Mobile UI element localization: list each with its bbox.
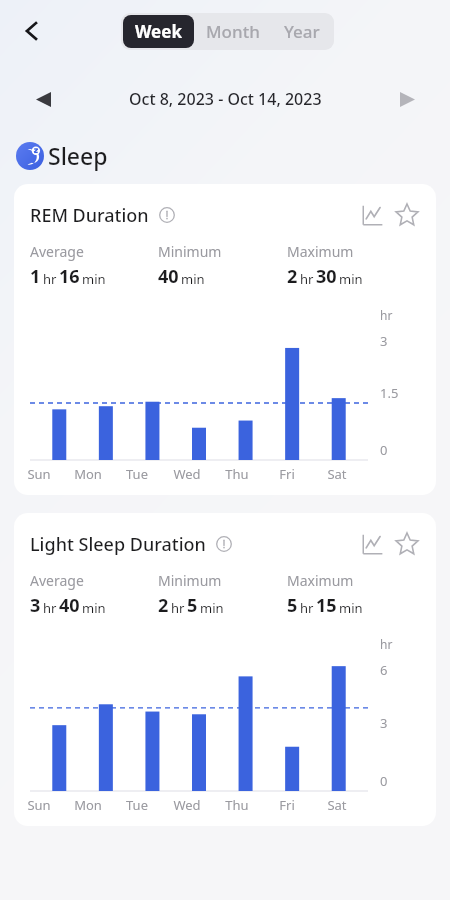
staticText: Tue: [126, 796, 148, 814]
button[interactable]: Chart view: [356, 199, 388, 231]
staticText: REM Duration: [30, 203, 149, 228]
staticText: 6: [380, 661, 388, 679]
staticText: hr: [300, 599, 314, 617]
button[interactable]: Month: [194, 15, 272, 48]
staticText: Tue: [126, 465, 148, 483]
button[interactable]: Info: [213, 533, 235, 555]
staticText: Fri: [279, 796, 295, 814]
button[interactable]: Next week: [390, 82, 424, 116]
staticText: 15: [316, 593, 337, 618]
staticText: 3: [380, 332, 388, 350]
staticText: 0: [380, 441, 388, 459]
staticText: Week: [135, 20, 182, 43]
staticText: Wed: [173, 796, 201, 814]
staticText: min: [339, 270, 363, 288]
staticText: hr: [171, 599, 185, 617]
button[interactable]: Favorite: [390, 198, 424, 232]
staticText: 16: [59, 264, 80, 289]
staticText: 3: [30, 593, 41, 618]
staticText: Year: [284, 20, 320, 43]
staticText: 3: [380, 714, 388, 732]
staticText: 1.5: [380, 384, 399, 402]
staticText: Sat: [327, 796, 347, 814]
staticText: 1: [30, 264, 41, 289]
staticText: Fri: [279, 465, 295, 483]
staticText: 5: [287, 593, 298, 618]
staticText: Light Sleep Duration: [30, 532, 206, 557]
staticText: Sun: [27, 796, 51, 814]
staticText: min: [200, 599, 224, 617]
staticText: Oct 8, 2023 - Oct 14, 2023: [129, 88, 322, 110]
staticText: hr: [380, 307, 393, 323]
staticText: Mon: [74, 796, 102, 814]
staticText: 5: [187, 593, 198, 618]
staticText: Average: [30, 571, 84, 590]
button[interactable]: Previous week: [26, 82, 60, 116]
staticText: Mon: [74, 465, 102, 483]
staticText: hr: [43, 599, 57, 617]
staticText: Minimum: [158, 571, 222, 590]
staticText: min: [82, 270, 106, 288]
staticText: min: [339, 599, 363, 617]
staticText: hr: [300, 270, 314, 288]
staticText: Average: [30, 242, 84, 261]
button[interactable]: Chart view: [356, 528, 388, 560]
staticText: 40: [59, 593, 80, 618]
staticText: Sun: [27, 465, 51, 483]
staticText: Thu: [225, 465, 249, 483]
button[interactable]: Light Sleep Duration: [14, 513, 436, 826]
staticText: Maximum: [287, 242, 354, 261]
staticText: min: [181, 270, 205, 288]
button[interactable]: Year: [272, 15, 332, 48]
staticText: min: [82, 599, 106, 617]
staticText: Maximum: [287, 571, 354, 590]
staticText: Thu: [225, 796, 249, 814]
staticText: Sleep: [48, 140, 108, 171]
staticText: Month: [206, 20, 260, 43]
staticText: 2: [158, 593, 169, 618]
button[interactable]: Info: [156, 204, 178, 226]
staticText: Sat: [327, 465, 347, 483]
staticText: 30: [316, 264, 337, 289]
staticText: Wed: [173, 465, 201, 483]
staticText: hr: [43, 270, 57, 288]
staticText: 40: [158, 264, 179, 289]
staticText: 0: [380, 772, 388, 790]
staticText: 2: [287, 264, 298, 289]
staticText: Minimum: [158, 242, 222, 261]
button[interactable]: Favorite: [390, 527, 424, 561]
button[interactable]: Week: [123, 15, 194, 48]
button[interactable]: REM Duration: [14, 184, 436, 495]
staticText: hr: [380, 636, 393, 652]
button[interactable]: Back: [10, 9, 54, 53]
